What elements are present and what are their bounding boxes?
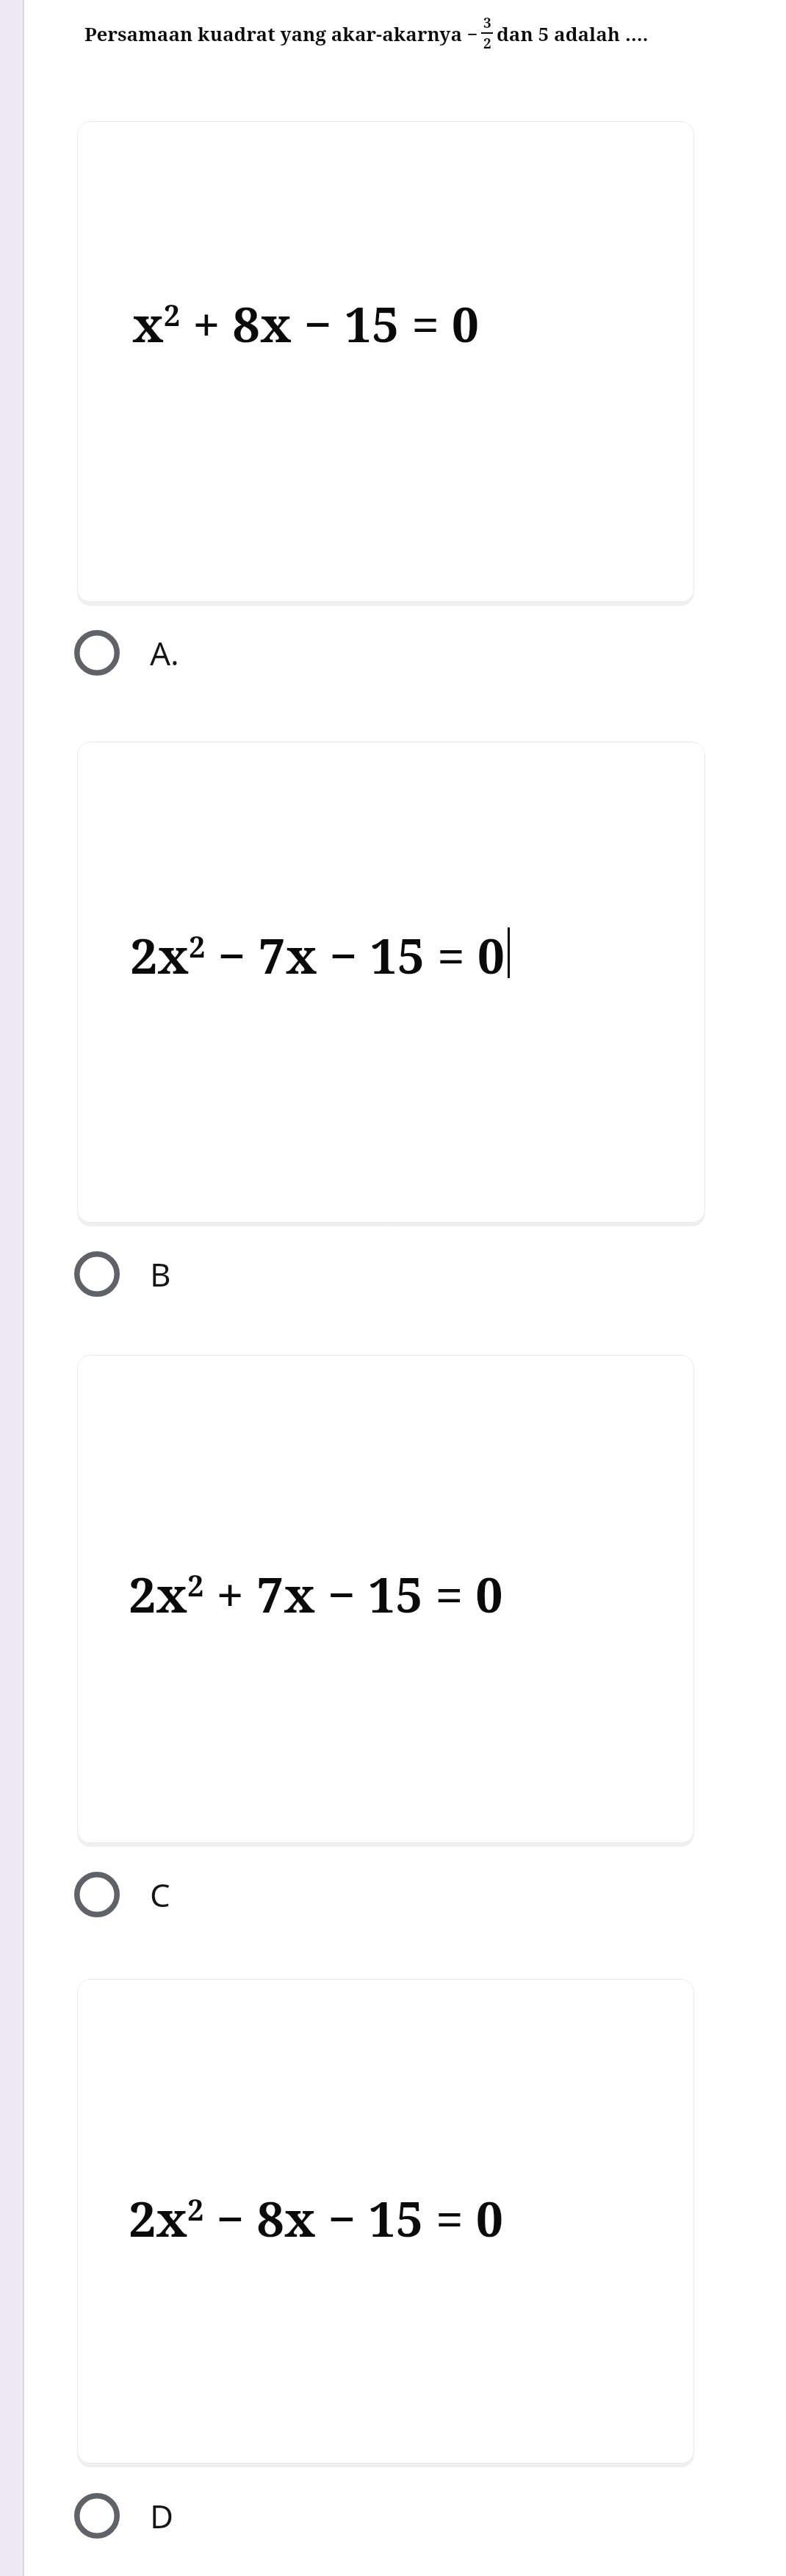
staticText: 2x2 − 8x − 15 = 0 — [129, 2185, 503, 2251]
button[interactable] — [77, 121, 694, 602]
staticText: 2x2 + 7x − 15 = 0 — [129, 1560, 503, 1627]
staticText: D — [150, 2494, 174, 2538]
button[interactable]: Option A — [73, 625, 309, 681]
staticText: 3 — [483, 13, 491, 32]
staticText: dan 5 adalah …. — [497, 21, 649, 46]
staticText: Persamaan kuadrat yang akar-akarnya − — [84, 21, 478, 46]
staticText: C — [150, 1873, 170, 1917]
staticText: 2x2 − 7x − 15 = 0 — [130, 922, 505, 988]
button[interactable] — [77, 1979, 694, 2464]
staticText: x2 + 8x − 15 = 0 — [132, 290, 480, 356]
button[interactable]: Option B — [73, 1246, 309, 1302]
button[interactable]: Option D — [73, 2488, 309, 2544]
staticText: 2 — [483, 34, 491, 53]
staticText: B — [150, 1252, 171, 1296]
button[interactable] — [77, 1355, 694, 1843]
button[interactable]: Option C — [73, 1867, 309, 1922]
button[interactable] — [77, 742, 705, 1223]
staticText: A. — [150, 631, 179, 675]
